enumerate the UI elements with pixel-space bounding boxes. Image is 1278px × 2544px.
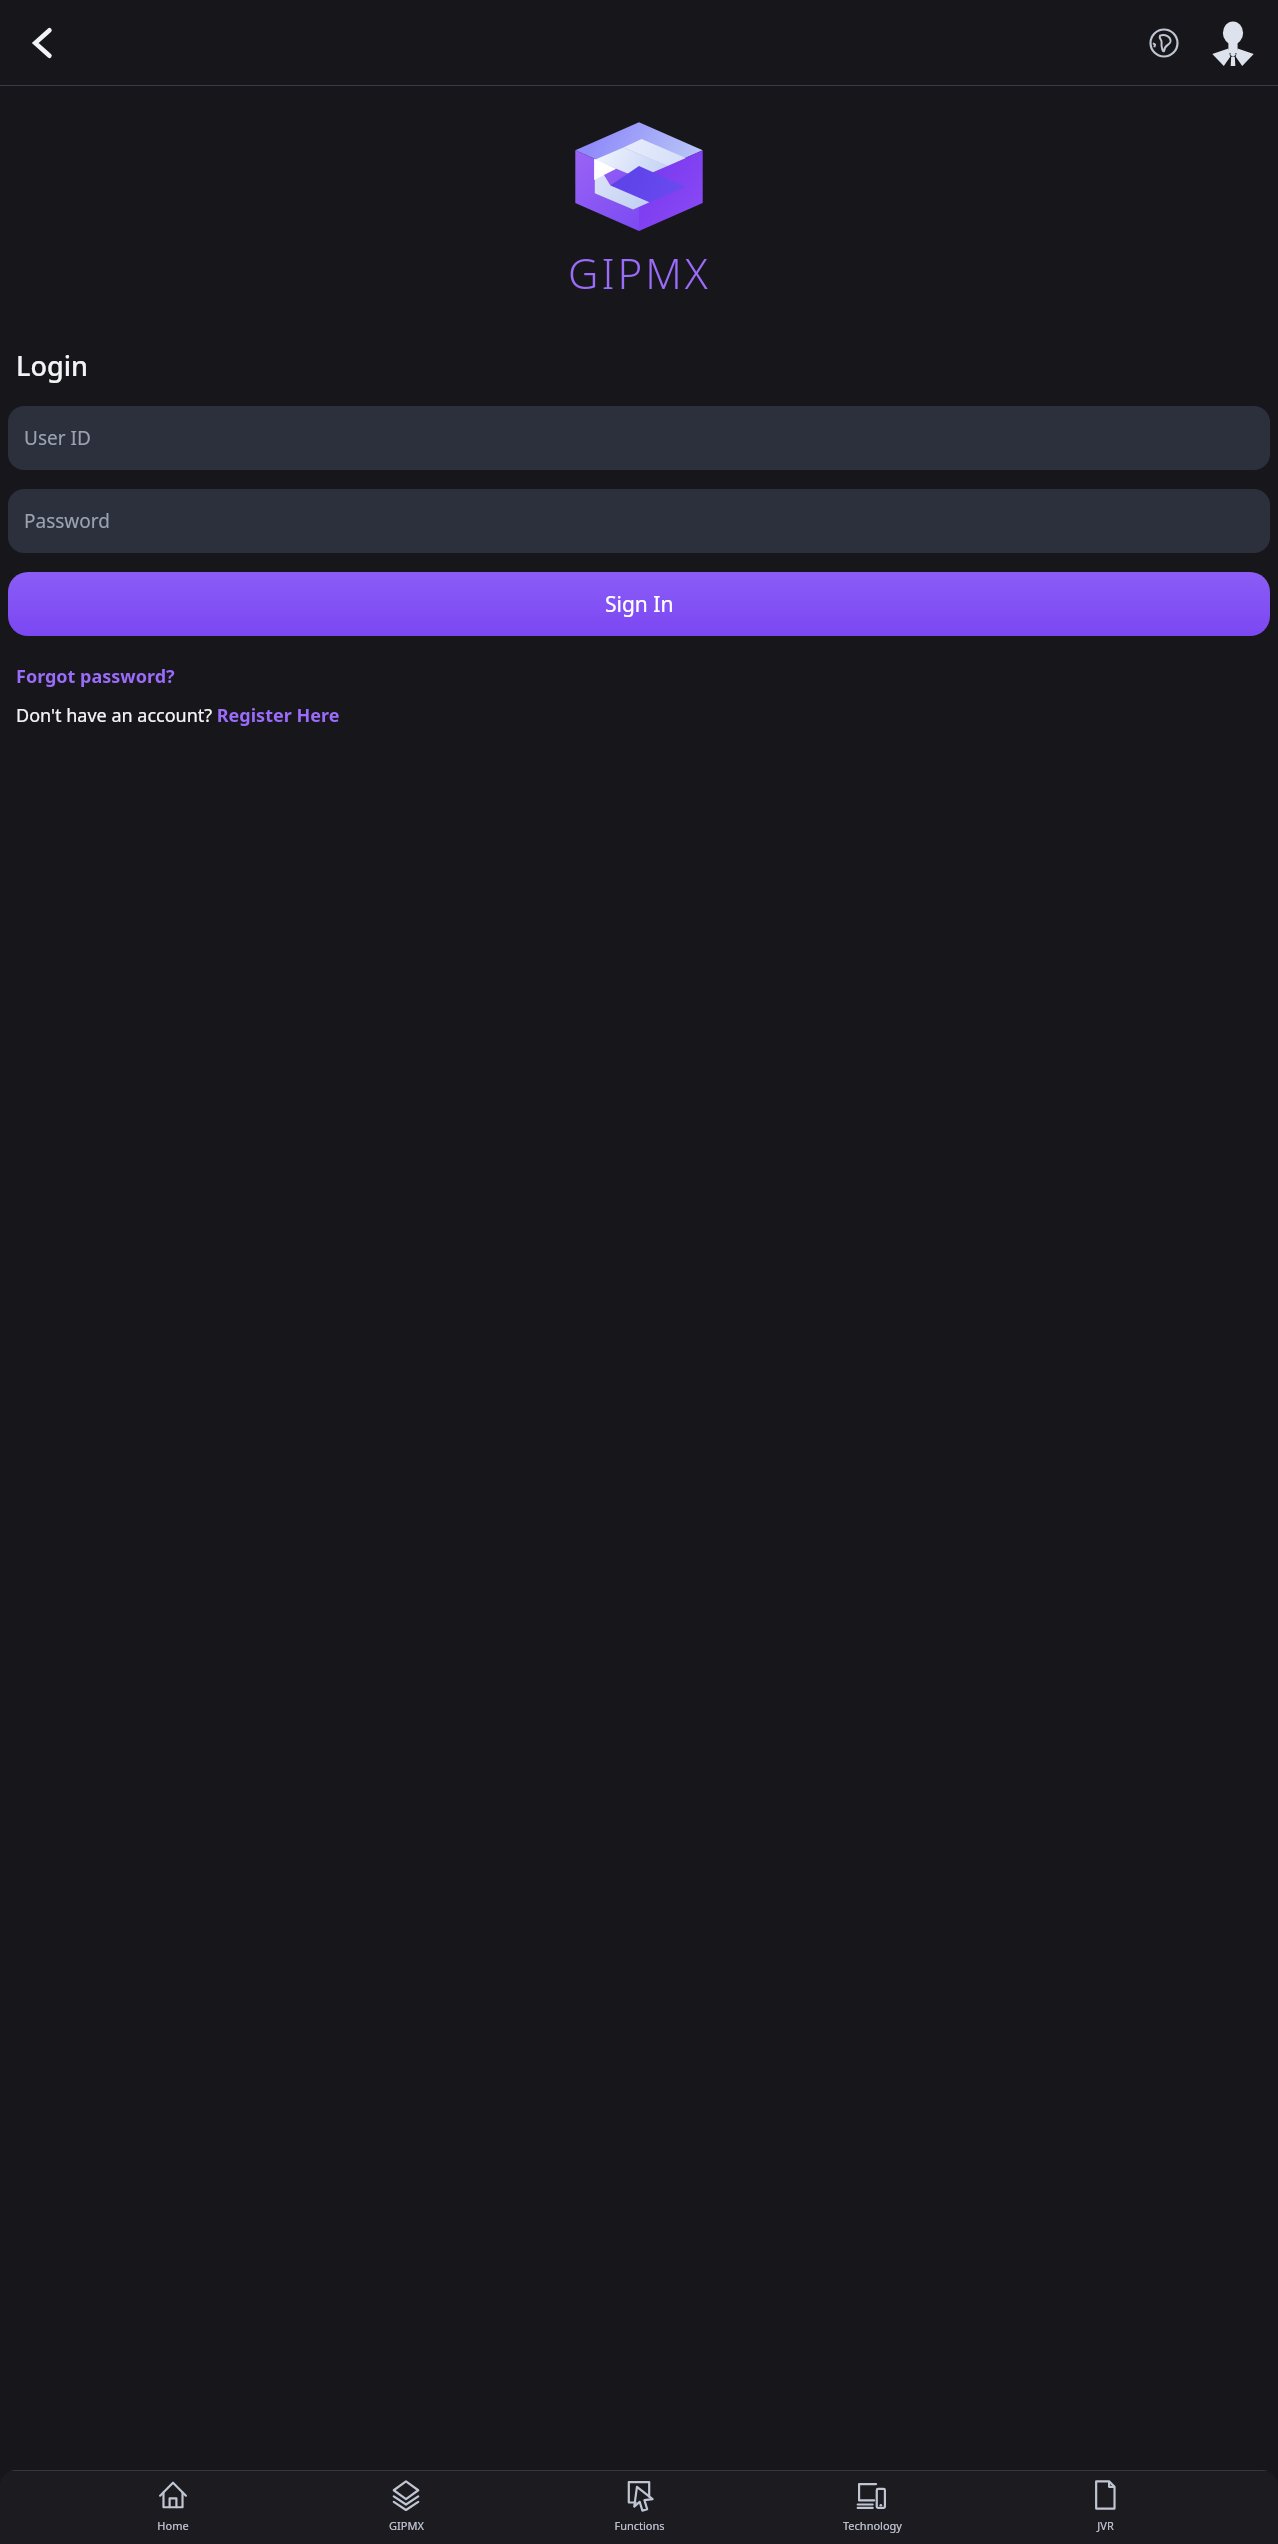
staticText: User ID [24,425,91,451]
staticText: GIPMX [389,2518,424,2533]
button[interactable]: Functions [579,2478,699,2544]
staticText: Technology [843,2518,902,2533]
button[interactable]: Password [8,489,1270,553]
staticText: Functions [614,2518,665,2533]
button[interactable]: Forgot password? [16,664,175,689]
button[interactable]: Sign In [8,572,1270,636]
staticText: Login [16,347,88,384]
button[interactable]: User ID [8,406,1270,470]
button[interactable]: GIPMX [346,2478,466,2544]
button[interactable]: Language [1138,17,1190,69]
button[interactable]: Profile [1204,14,1262,72]
staticText: GIPMX [568,244,711,301]
button[interactable]: Technology [812,2478,932,2544]
button[interactable]: Don't have an account? Register Here [16,703,340,728]
button[interactable]: Back [6,14,64,72]
staticText: Sign In [605,590,674,619]
button[interactable]: JVR [1045,2478,1165,2544]
staticText: Home [157,2518,189,2533]
button[interactable]: Home [113,2478,233,2544]
staticText: Password [24,508,110,534]
staticText: JVR [1097,2518,1114,2533]
